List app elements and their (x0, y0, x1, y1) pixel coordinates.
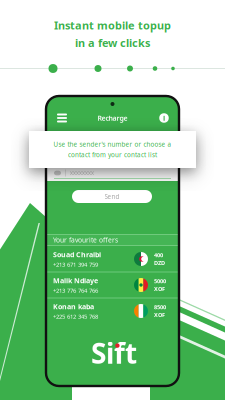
button[interactable]: Send (72, 190, 152, 203)
button[interactable]: Konan kaba (46, 298, 179, 324)
staticText: Souad Chraibi (53, 250, 101, 259)
staticText: 5000 (154, 277, 166, 285)
staticText: in a few clicks (75, 35, 150, 50)
staticText: +213 671 394 759 (53, 260, 98, 268)
staticText: XOF (154, 311, 165, 319)
staticText: 400 (154, 251, 163, 259)
button[interactable]: Malik Ndiaye (46, 272, 179, 298)
staticText: contact from your contact list (68, 150, 157, 159)
staticText: i (163, 113, 165, 123)
staticText: Your favourite offers (53, 235, 118, 245)
staticText: DZD (154, 259, 165, 267)
staticText: Konan kaba (53, 302, 94, 311)
staticText: XOF (154, 285, 165, 293)
staticText: Sift (91, 334, 137, 372)
button[interactable]: Menu (54, 111, 70, 125)
staticText: Instant mobile topup (54, 18, 171, 33)
button[interactable]: Information (157, 111, 171, 125)
button[interactable]: Souad Chraibi (46, 246, 179, 272)
staticText: Send (104, 192, 119, 201)
staticText: 8500 (154, 303, 166, 311)
staticText: +213 776 764 766 (53, 286, 98, 294)
staticText: +225 612 345 768 (53, 312, 98, 320)
staticText: Recharge (97, 113, 127, 123)
staticText: Use the sender's number or choose a (53, 140, 171, 148)
staticText: Malik Ndiaye (53, 276, 98, 285)
staticText: XXXXXXXX (70, 169, 94, 177)
